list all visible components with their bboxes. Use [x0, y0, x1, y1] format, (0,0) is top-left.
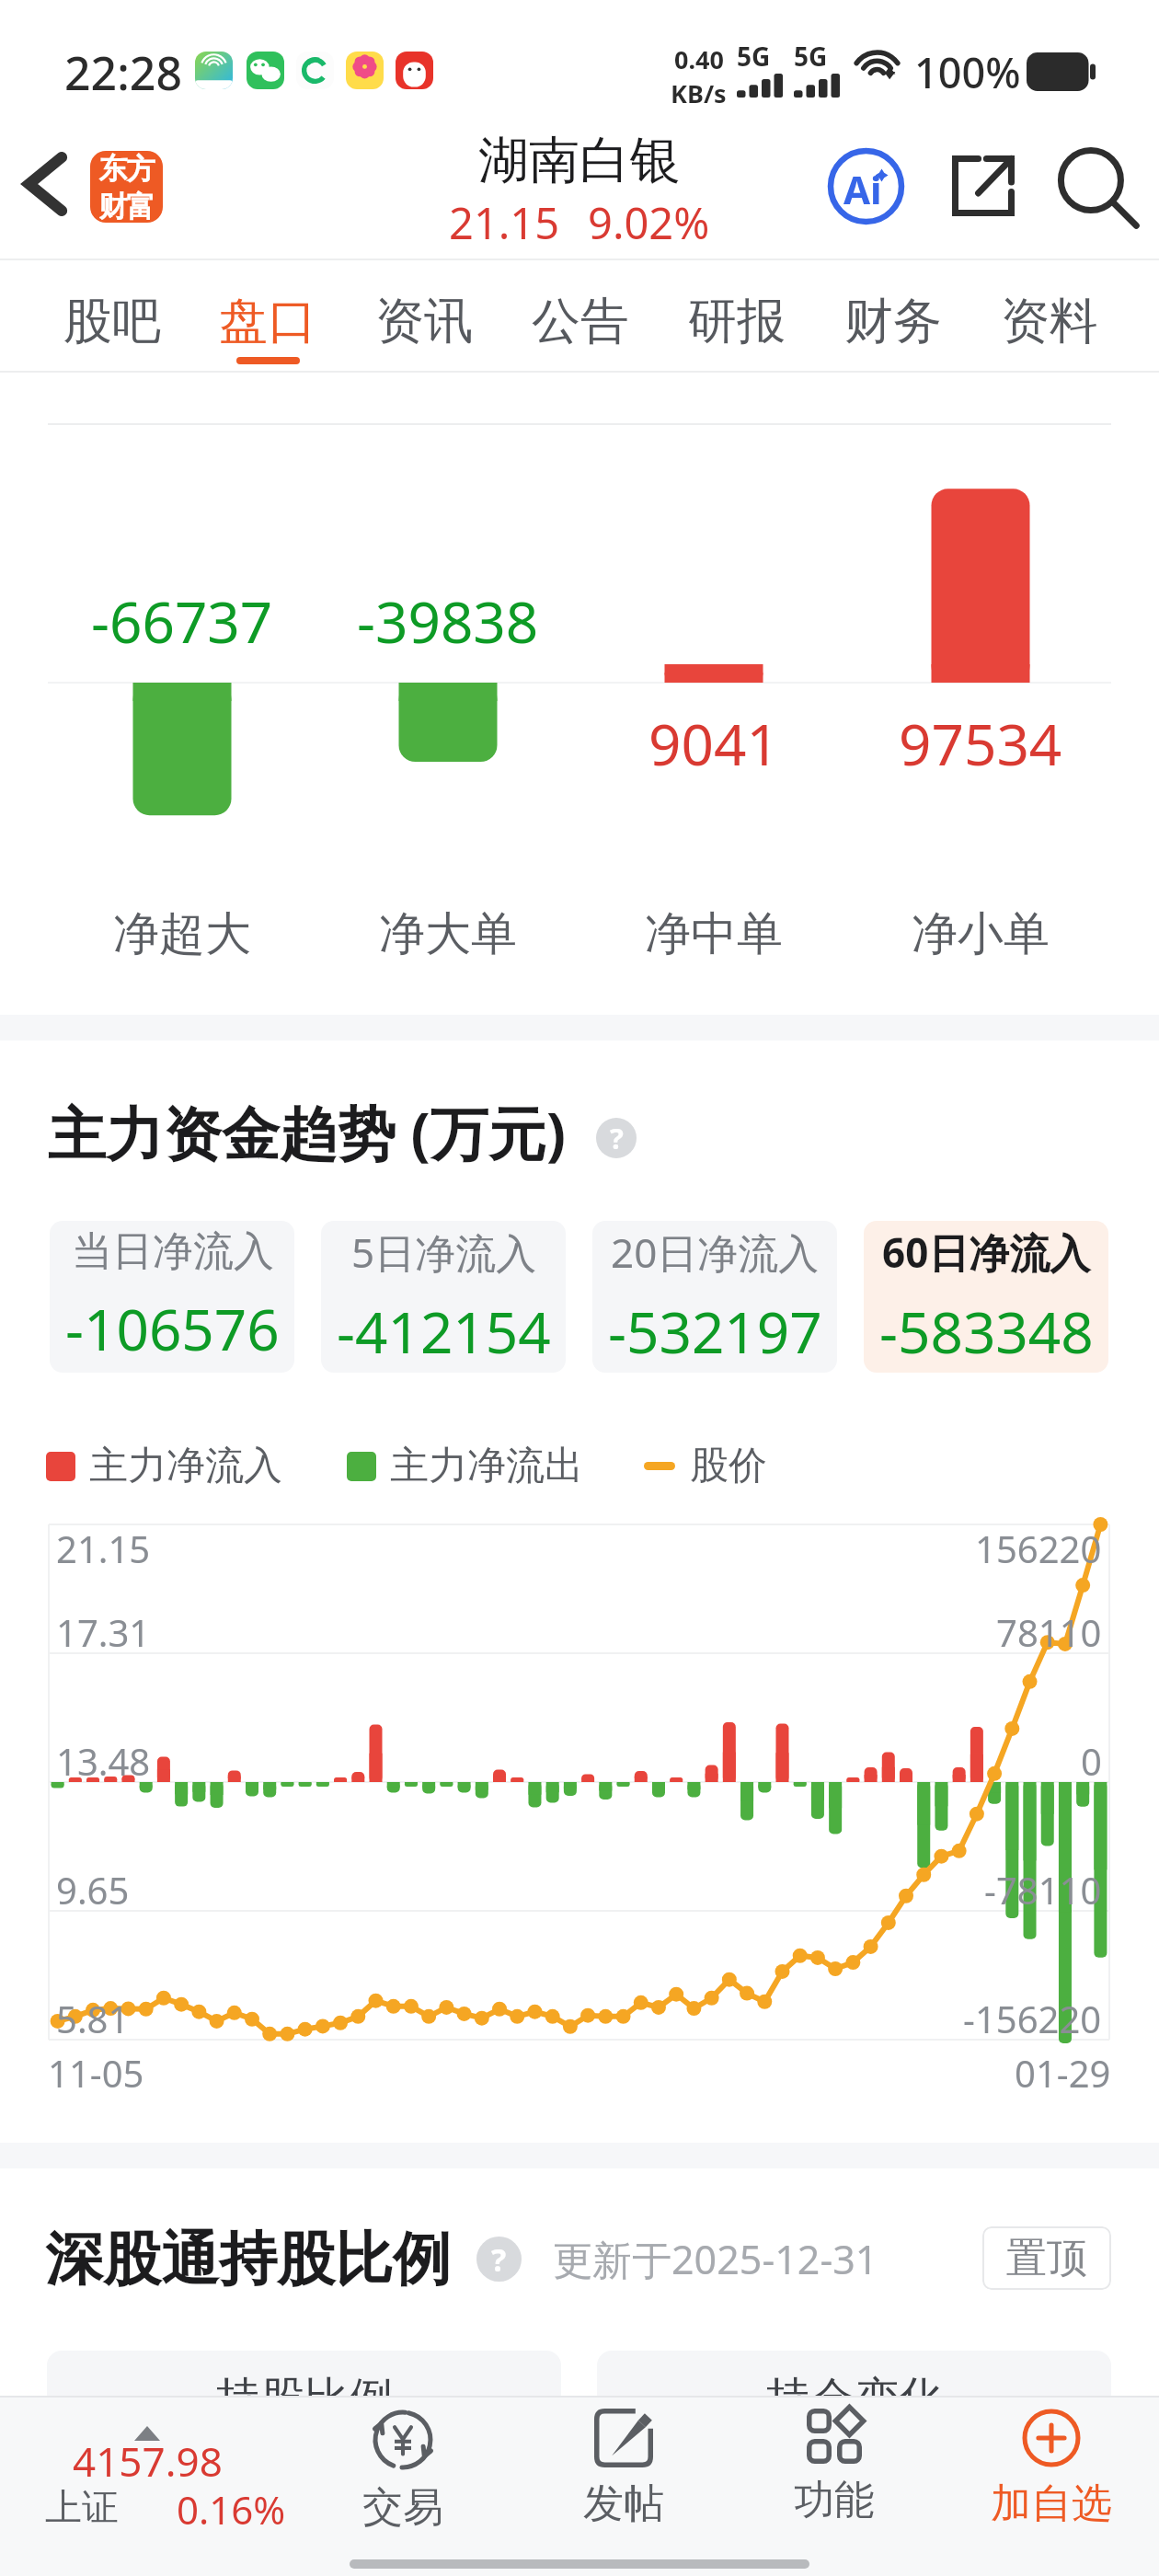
staticText: KB/s: [671, 76, 727, 110]
staticText: 深股通持股比例: [45, 2223, 451, 2295]
staticText: 研报: [688, 291, 786, 352]
staticText: 4157.98: [73, 2433, 223, 2489]
staticText: 11-05: [48, 2048, 144, 2098]
staticText: -66737: [91, 582, 273, 660]
staticText: 13.48: [56, 1736, 151, 1786]
staticText: 功能: [794, 2475, 875, 2525]
button[interactable]: 20日净流入: [592, 1221, 837, 1373]
staticText: 97534: [899, 705, 1062, 782]
button[interactable]: 持仓变化: [597, 2351, 1111, 2535]
staticText: 更新于2025-12-31: [553, 2232, 878, 2286]
button[interactable]: 交易: [302, 2396, 504, 2538]
button[interactable]: 5日净流入: [321, 1221, 566, 1373]
staticText: 22:28: [64, 41, 182, 104]
staticText: 156220: [975, 1524, 1102, 1573]
staticText: 发帖: [583, 2478, 664, 2529]
staticText: 5G: [794, 39, 828, 74]
staticText: 公告: [532, 291, 629, 352]
staticText: 01-29: [1015, 2048, 1111, 2098]
staticText: 财富: [99, 189, 155, 223]
staticText: 78110: [996, 1607, 1102, 1657]
button[interactable]: 股吧: [34, 260, 189, 373]
staticText: -583348: [879, 1293, 1094, 1370]
staticText: 17.31: [56, 1607, 151, 1657]
staticText: 净小单: [912, 905, 1050, 963]
staticText: -78110: [984, 1865, 1102, 1915]
button[interactable]: 当日净流入: [50, 1221, 294, 1373]
button[interactable]: Help: [476, 2237, 522, 2282]
staticText: 0.40: [674, 42, 724, 76]
staticText: -39838: [357, 582, 539, 660]
button[interactable]: 60日净流入: [864, 1221, 1108, 1373]
staticText: 湖南白银: [478, 129, 681, 192]
staticText: 当日净流入: [72, 1226, 274, 1277]
staticText: 60日净流入: [882, 1225, 1091, 1280]
staticText: 9041: [648, 705, 779, 782]
staticText: 主力净流出: [390, 1442, 583, 1490]
button[interactable]: 资讯: [346, 260, 502, 373]
staticText: 资料: [1001, 291, 1098, 352]
button[interactable]: 盘口: [189, 260, 346, 373]
button[interactable]: 公告: [502, 260, 659, 373]
staticText: 股价: [690, 1442, 767, 1490]
button[interactable]: 置顶: [982, 2226, 1111, 2290]
button[interactable]: Back: [5, 143, 87, 225]
staticText: ?: [491, 2238, 507, 2281]
staticText: -156220: [963, 1994, 1102, 2043]
staticText: 20日净流入: [611, 1225, 820, 1280]
staticText: 5G: [737, 39, 771, 74]
staticText: 置顶: [1006, 2233, 1087, 2283]
staticText: 净大单: [379, 905, 517, 963]
staticText: 资讯: [375, 291, 473, 352]
button[interactable]: 财务: [815, 260, 971, 373]
button[interactable]: Help: [596, 1118, 637, 1158]
staticText: 财务: [844, 291, 942, 352]
button[interactable]: 研报: [659, 260, 815, 373]
staticText: 持股比例: [216, 2371, 393, 2426]
staticText: 21.15: [56, 1524, 151, 1573]
staticText: 净中单: [645, 905, 783, 963]
staticText: -106576: [65, 1290, 280, 1367]
staticText: 净超大: [113, 905, 251, 963]
staticText: 9.02%: [588, 193, 710, 252]
staticText: 盘口: [219, 291, 316, 352]
button[interactable]: 持股比例: [47, 2351, 561, 2535]
staticText: 9.65: [56, 1865, 130, 1915]
staticText: 21.15: [449, 193, 560, 252]
staticText: -532197: [608, 1293, 822, 1370]
button[interactable]: 发帖: [522, 2396, 725, 2538]
button[interactable]: Share: [940, 143, 1027, 229]
staticText: 0: [1081, 1736, 1102, 1786]
staticText: 上证: [45, 2484, 119, 2530]
staticText: 持仓变化: [766, 2371, 943, 2426]
staticText: Ai: [843, 163, 882, 215]
staticText: 主力资金趋势 (万元): [48, 1093, 567, 1172]
staticText: 股吧: [63, 291, 161, 352]
staticText: 主力净流入: [89, 1442, 282, 1490]
staticText: 0.16%: [177, 2483, 286, 2536]
staticText: 100%: [914, 44, 1021, 100]
button[interactable]: 功能: [733, 2396, 935, 2538]
staticText: 5日净流入: [351, 1225, 537, 1280]
button[interactable]: 资料: [971, 260, 1128, 373]
button[interactable]: 加自选: [950, 2396, 1153, 2538]
button[interactable]: Search: [1053, 143, 1140, 229]
staticText: -412154: [337, 1293, 551, 1370]
staticText: 交易: [362, 2482, 443, 2533]
button[interactable]: 4157.98: [0, 2396, 322, 2534]
staticText: 加自选: [991, 2478, 1112, 2529]
staticText: 5.81: [56, 1994, 130, 2043]
button[interactable]: East Money: [90, 151, 163, 223]
button[interactable]: AI assistant: [822, 143, 909, 229]
staticText: 东方: [99, 151, 155, 187]
staticText: ?: [610, 1119, 624, 1157]
